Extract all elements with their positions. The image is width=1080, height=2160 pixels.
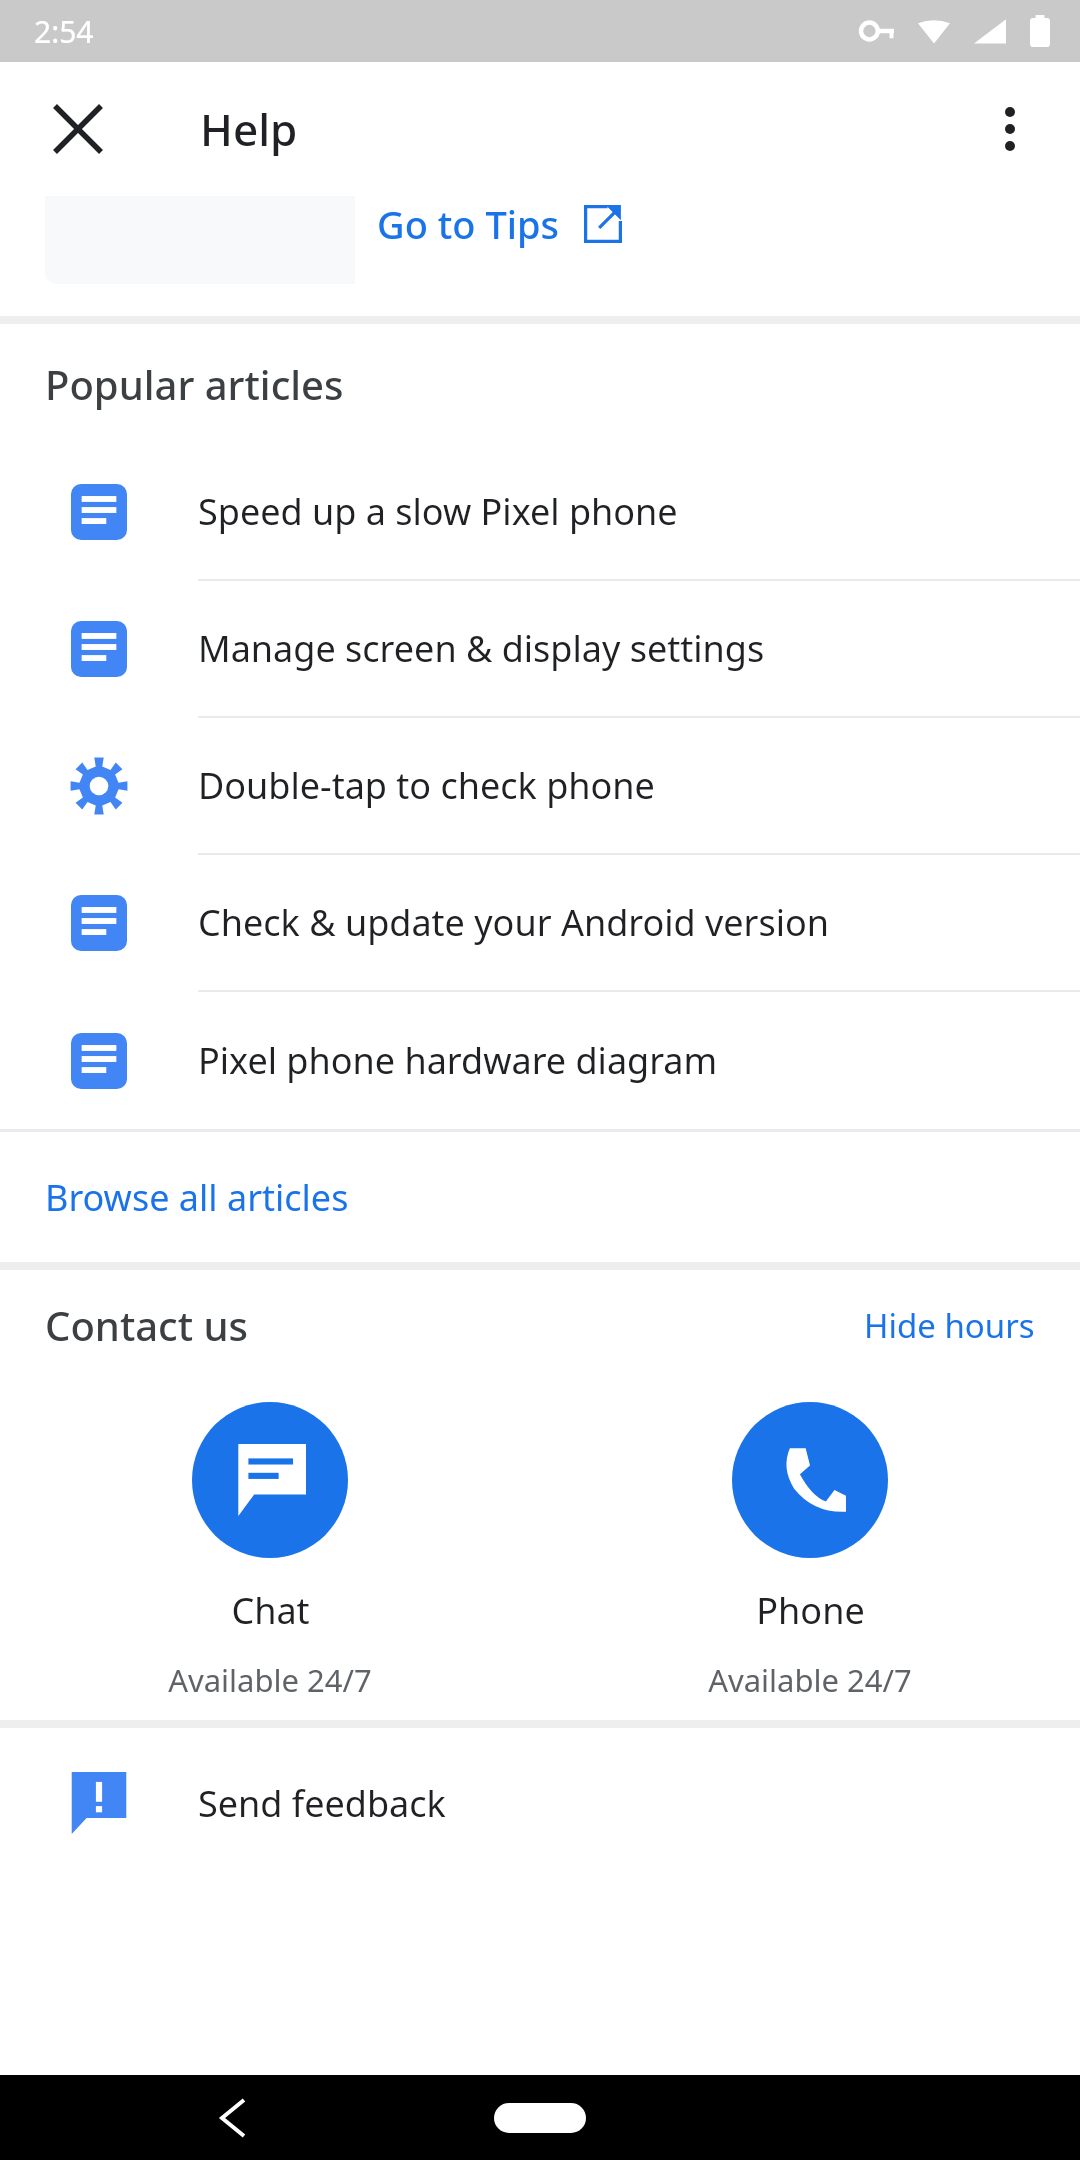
staticText: Chat: [231, 1586, 310, 1635]
button[interactable]: Send feedback: [0, 1728, 1080, 1878]
staticText: Help: [200, 99, 298, 159]
staticText: Manage screen & display settings: [198, 624, 765, 673]
button[interactable]: Browse all articles: [0, 1132, 1080, 1262]
button[interactable]: Hide hours: [864, 1303, 1035, 1348]
button[interactable]: Manage screen & display settings: [0, 581, 1080, 716]
staticText: Available 24/7: [708, 1659, 912, 1701]
button[interactable]: Back: [190, 2075, 276, 2160]
staticText: Speed up a slow Pixel phone: [198, 487, 678, 536]
staticText: Send feedback: [198, 1779, 446, 1828]
button[interactable]: Phone: [540, 1380, 1080, 1701]
button[interactable]: Close: [30, 81, 126, 177]
staticText: Contact us: [45, 1298, 248, 1352]
staticText: Available 24/7: [168, 1659, 372, 1701]
staticText: Hide hours: [864, 1303, 1035, 1348]
button[interactable]: Speed up a slow Pixel phone: [0, 444, 1080, 579]
staticText: Phone: [756, 1586, 865, 1635]
staticText: Popular articles: [45, 357, 344, 411]
staticText: Browse all articles: [45, 1173, 349, 1222]
staticText: Check & update your Android version: [198, 898, 830, 947]
button[interactable]: Double-tap to check phone: [0, 718, 1080, 853]
button[interactable]: Chat: [0, 1380, 540, 1701]
button[interactable]: Check & update your Android version: [0, 855, 1080, 990]
button[interactable]: Home: [494, 2103, 586, 2133]
staticText: Double-tap to check phone: [198, 761, 655, 810]
staticText: 2:54: [34, 11, 94, 52]
button[interactable]: Pixel phone hardware diagram: [0, 992, 1080, 1129]
staticText: Pixel phone hardware diagram: [198, 1036, 718, 1085]
button[interactable]: Go to Tips: [355, 196, 1035, 284]
button[interactable]: More options: [962, 81, 1058, 177]
staticText: Go to Tips: [377, 198, 560, 250]
